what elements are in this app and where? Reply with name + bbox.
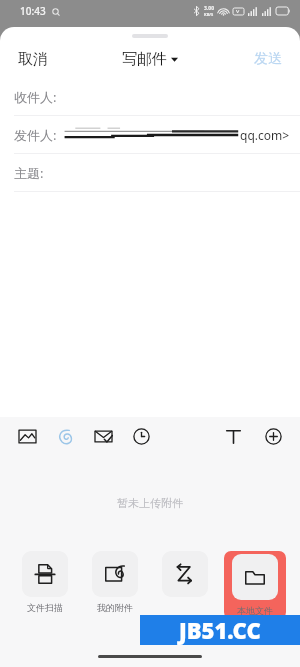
staticText: JB51.CC	[179, 615, 261, 645]
staticText: 收件人:	[14, 88, 57, 106]
button[interactable]: Schedule send	[128, 423, 154, 449]
button[interactable]: 文件扫描	[14, 551, 76, 613]
button[interactable]: 取消	[8, 44, 58, 75]
button[interactable]: 写邮件	[114, 45, 186, 74]
staticText: qq.com>	[240, 127, 290, 143]
button[interactable]: 收件人:	[0, 78, 300, 115]
staticText: 发件人:	[14, 126, 57, 144]
staticText: 暂未上传附件	[117, 496, 183, 510]
staticText: 本地文件	[237, 605, 273, 616]
staticText: 主题:	[14, 164, 44, 182]
staticText: 3.00	[204, 5, 214, 12]
button[interactable]: 主题:	[0, 154, 300, 191]
button[interactable]: 本地文件	[224, 551, 286, 619]
button[interactable]: 传输助手	[154, 551, 216, 613]
button[interactable]: 发件人:	[0, 116, 300, 153]
staticText: 我的附件	[97, 602, 133, 613]
staticText: 发送	[254, 50, 282, 68]
staticText: 10:43	[20, 4, 46, 18]
button[interactable]: Insert image	[14, 423, 40, 449]
button[interactable]: 发送	[244, 44, 292, 74]
staticText: 文件扫描	[27, 602, 63, 613]
button[interactable]: Mail receipt	[90, 423, 116, 449]
button[interactable]: 我的附件	[84, 551, 146, 613]
staticText: 取消	[18, 50, 48, 69]
staticText: KB/S	[204, 12, 214, 17]
staticText: 写邮件	[122, 50, 167, 69]
button[interactable]: More options	[260, 423, 286, 449]
button[interactable]: Voice note	[52, 423, 78, 449]
button[interactable]: Text format	[220, 423, 246, 449]
